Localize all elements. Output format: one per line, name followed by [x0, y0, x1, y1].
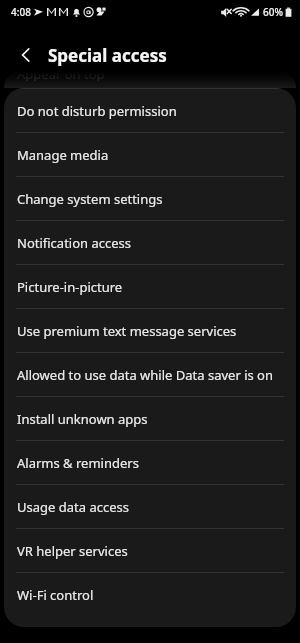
staticText: Wi-Fi control	[17, 586, 94, 604]
staticText: Special access	[48, 44, 167, 67]
staticText: Install unknown apps	[17, 410, 148, 428]
staticText: VR helper services	[17, 542, 128, 560]
button[interactable]: Back	[10, 38, 44, 72]
button[interactable]: Alarms & reminders	[4, 441, 296, 484]
staticText: Manage media	[17, 146, 109, 164]
staticText: 4:08	[11, 5, 31, 19]
button[interactable]: Change system settings	[4, 177, 296, 220]
staticText: Change system settings	[17, 190, 163, 208]
staticText: Usage data access	[17, 498, 129, 516]
staticText: Use premium text message services	[17, 322, 237, 340]
staticText: Allowed to use data while Data saver is …	[17, 366, 273, 384]
button[interactable]: VR helper services	[4, 529, 296, 572]
button[interactable]: Picture-in-picture	[4, 265, 296, 308]
button[interactable]: Use premium text message services	[4, 309, 296, 352]
button[interactable]: Do not disturb permission	[4, 89, 296, 132]
staticText: Picture-in-picture	[17, 278, 123, 296]
button[interactable]: Manage media	[4, 133, 296, 176]
staticText: Do not disturb permission	[17, 102, 177, 120]
staticText: 60%	[263, 5, 283, 19]
button[interactable]: Wi-Fi control	[4, 573, 296, 616]
button[interactable]: Install unknown apps	[4, 397, 296, 440]
staticText: Notification access	[17, 234, 132, 252]
staticText: Alarms & reminders	[17, 454, 139, 472]
staticText: Appear on top	[17, 72, 105, 81]
button[interactable]: Usage data access	[4, 485, 296, 528]
button[interactable]: Notification access	[4, 221, 296, 264]
button[interactable]: Allowed to use data while Data saver is …	[4, 353, 296, 396]
